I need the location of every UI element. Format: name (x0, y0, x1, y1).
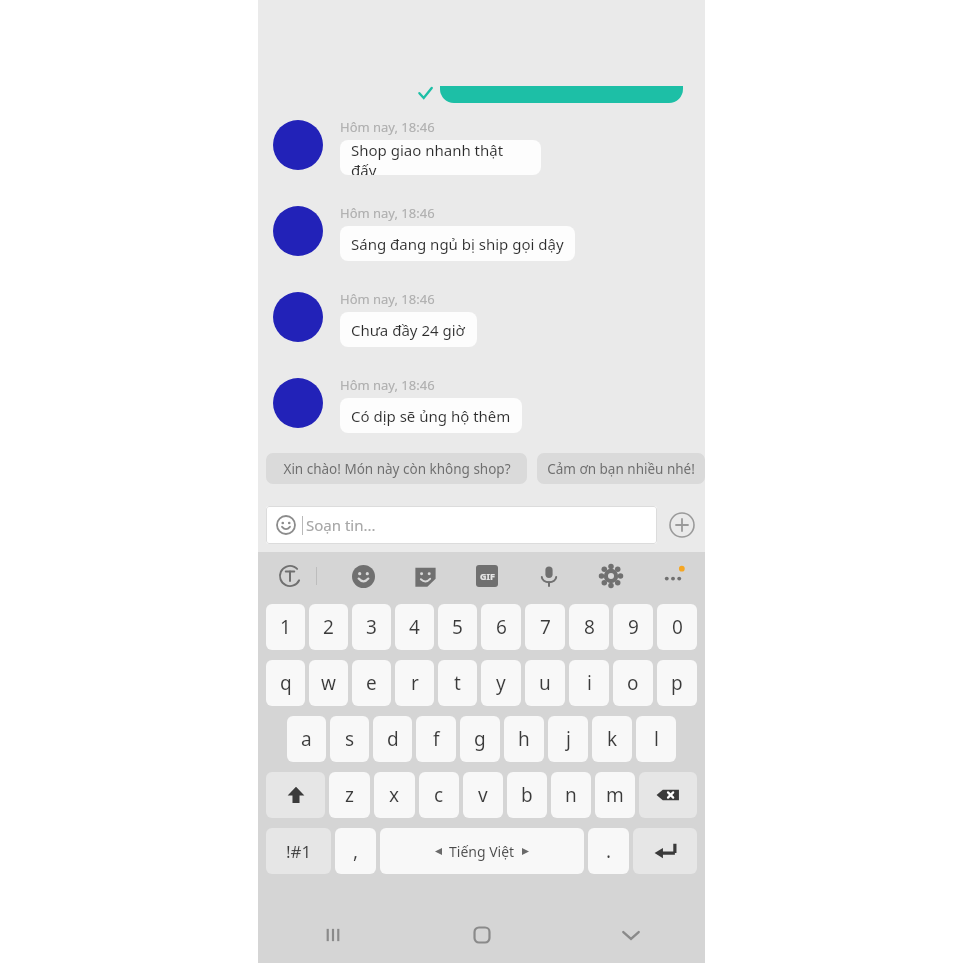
button[interactable]: Chưa đầy 24 giờ (340, 312, 477, 347)
button[interactable]: Hide keyboard (556, 907, 705, 963)
staticText: Hôm nay, 18:46 (340, 204, 435, 222)
staticText: h (518, 726, 530, 752)
button[interactable]: Avatar (273, 206, 323, 256)
button[interactable]: Avatar (273, 292, 323, 342)
staticText: 7 (540, 614, 551, 640)
button[interactable]: !#1 (266, 828, 331, 874)
staticText: Xin chào! Món này còn không shop? (283, 460, 511, 478)
button[interactable]: r (395, 660, 434, 706)
button[interactable]: g (460, 716, 500, 762)
button[interactable]: Soạn tin... (266, 506, 657, 544)
button[interactable]: z (329, 772, 370, 818)
staticText: e (366, 670, 377, 696)
staticText: Hôm nay, 18:46 (340, 376, 435, 394)
button[interactable]: y (481, 660, 521, 706)
button[interactable]: Enter (633, 828, 697, 874)
button[interactable]: Xin chào! Món này còn không shop? (266, 453, 527, 484)
staticText: t (454, 670, 461, 696)
button[interactable]: Home (407, 907, 556, 963)
button[interactable]: 8 (569, 604, 609, 650)
staticText: Shop giao nhanh thật đấy (351, 140, 530, 175)
button[interactable] (440, 86, 683, 103)
button[interactable]: a (287, 716, 326, 762)
staticText: Sáng đang ngủ bị ship gọi dậy (351, 234, 564, 254)
button[interactable]: Settings (595, 560, 627, 592)
staticText: GIF (480, 570, 495, 582)
button[interactable]: k (592, 716, 632, 762)
staticText: j (566, 726, 571, 752)
button[interactable]: Avatar (273, 120, 323, 170)
button[interactable]: 1 (266, 604, 305, 650)
button[interactable]: Sáng đang ngủ bị ship gọi dậy (340, 226, 575, 261)
button[interactable]: h (504, 716, 544, 762)
staticText: k (607, 726, 618, 752)
button[interactable]: Backspace (639, 772, 697, 818)
button[interactable]: Add attachment (667, 510, 697, 540)
button[interactable]: More options (657, 560, 689, 592)
button[interactable]: w (309, 660, 348, 706)
staticText: i (587, 670, 592, 696)
staticText: q (280, 670, 292, 696)
staticText: l (654, 726, 659, 752)
button[interactable]: Emoji (347, 560, 379, 592)
staticText: 3 (366, 614, 377, 640)
staticText: !#1 (286, 840, 312, 863)
button[interactable]: Voice input (533, 560, 565, 592)
button[interactable]: 7 (525, 604, 565, 650)
button[interactable]: x (374, 772, 415, 818)
button[interactable]: GIF (471, 560, 503, 592)
button[interactable]: Cảm ơn bạn nhiều nhé! (537, 453, 705, 484)
staticText: f (433, 726, 440, 752)
button[interactable]: f (416, 716, 456, 762)
button[interactable]: b (507, 772, 547, 818)
button[interactable]: Shift (266, 772, 325, 818)
button[interactable]: j (548, 716, 588, 762)
button[interactable]: c (419, 772, 459, 818)
button[interactable]: n (551, 772, 591, 818)
button[interactable]: 2 (309, 604, 348, 650)
staticText: x (389, 782, 400, 808)
staticText: 0 (672, 614, 683, 640)
button[interactable]: Avatar (273, 378, 323, 428)
staticText: o (627, 670, 639, 696)
button[interactable]: v (463, 772, 503, 818)
button[interactable]: i (569, 660, 609, 706)
staticText: s (345, 726, 355, 752)
button[interactable]: 9 (613, 604, 653, 650)
staticText: 1 (280, 614, 291, 640)
button[interactable]: e (352, 660, 391, 706)
button[interactable]: 6 (481, 604, 521, 650)
button[interactable]: 0 (657, 604, 697, 650)
button[interactable]: 3 (352, 604, 391, 650)
staticText: r (411, 670, 419, 696)
staticText: g (474, 726, 486, 752)
button[interactable]: 4 (395, 604, 434, 650)
staticText: Chưa đầy 24 giờ (351, 320, 465, 340)
button[interactable]: t (438, 660, 477, 706)
staticText: u (539, 670, 551, 696)
staticText: w (321, 670, 336, 696)
staticText: c (434, 782, 444, 808)
button[interactable]: 5 (438, 604, 477, 650)
button[interactable]: q (266, 660, 305, 706)
button[interactable]: o (613, 660, 653, 706)
staticText: Tiếng Việt (449, 842, 515, 861)
button[interactable]: l (636, 716, 676, 762)
button[interactable]: Shop giao nhanh thật đấy (340, 140, 541, 175)
staticText: . (606, 838, 612, 864)
button[interactable]: . (588, 828, 629, 874)
button[interactable]: Translate (274, 560, 306, 592)
button[interactable]: p (657, 660, 697, 706)
button[interactable]: Stickers (409, 560, 441, 592)
button[interactable]: u (525, 660, 565, 706)
button[interactable]: Recents (258, 907, 407, 963)
button[interactable]: Tiếng Việt (380, 828, 584, 874)
button[interactable]: s (330, 716, 369, 762)
button[interactable]: m (595, 772, 635, 818)
button[interactable]: d (373, 716, 412, 762)
staticText: z (345, 782, 354, 808)
button[interactable]: Có dịp sẽ ủng hộ thêm (340, 398, 522, 433)
staticText: Hôm nay, 18:46 (340, 290, 435, 308)
button[interactable]: , (335, 828, 376, 874)
staticText: a (301, 726, 312, 752)
